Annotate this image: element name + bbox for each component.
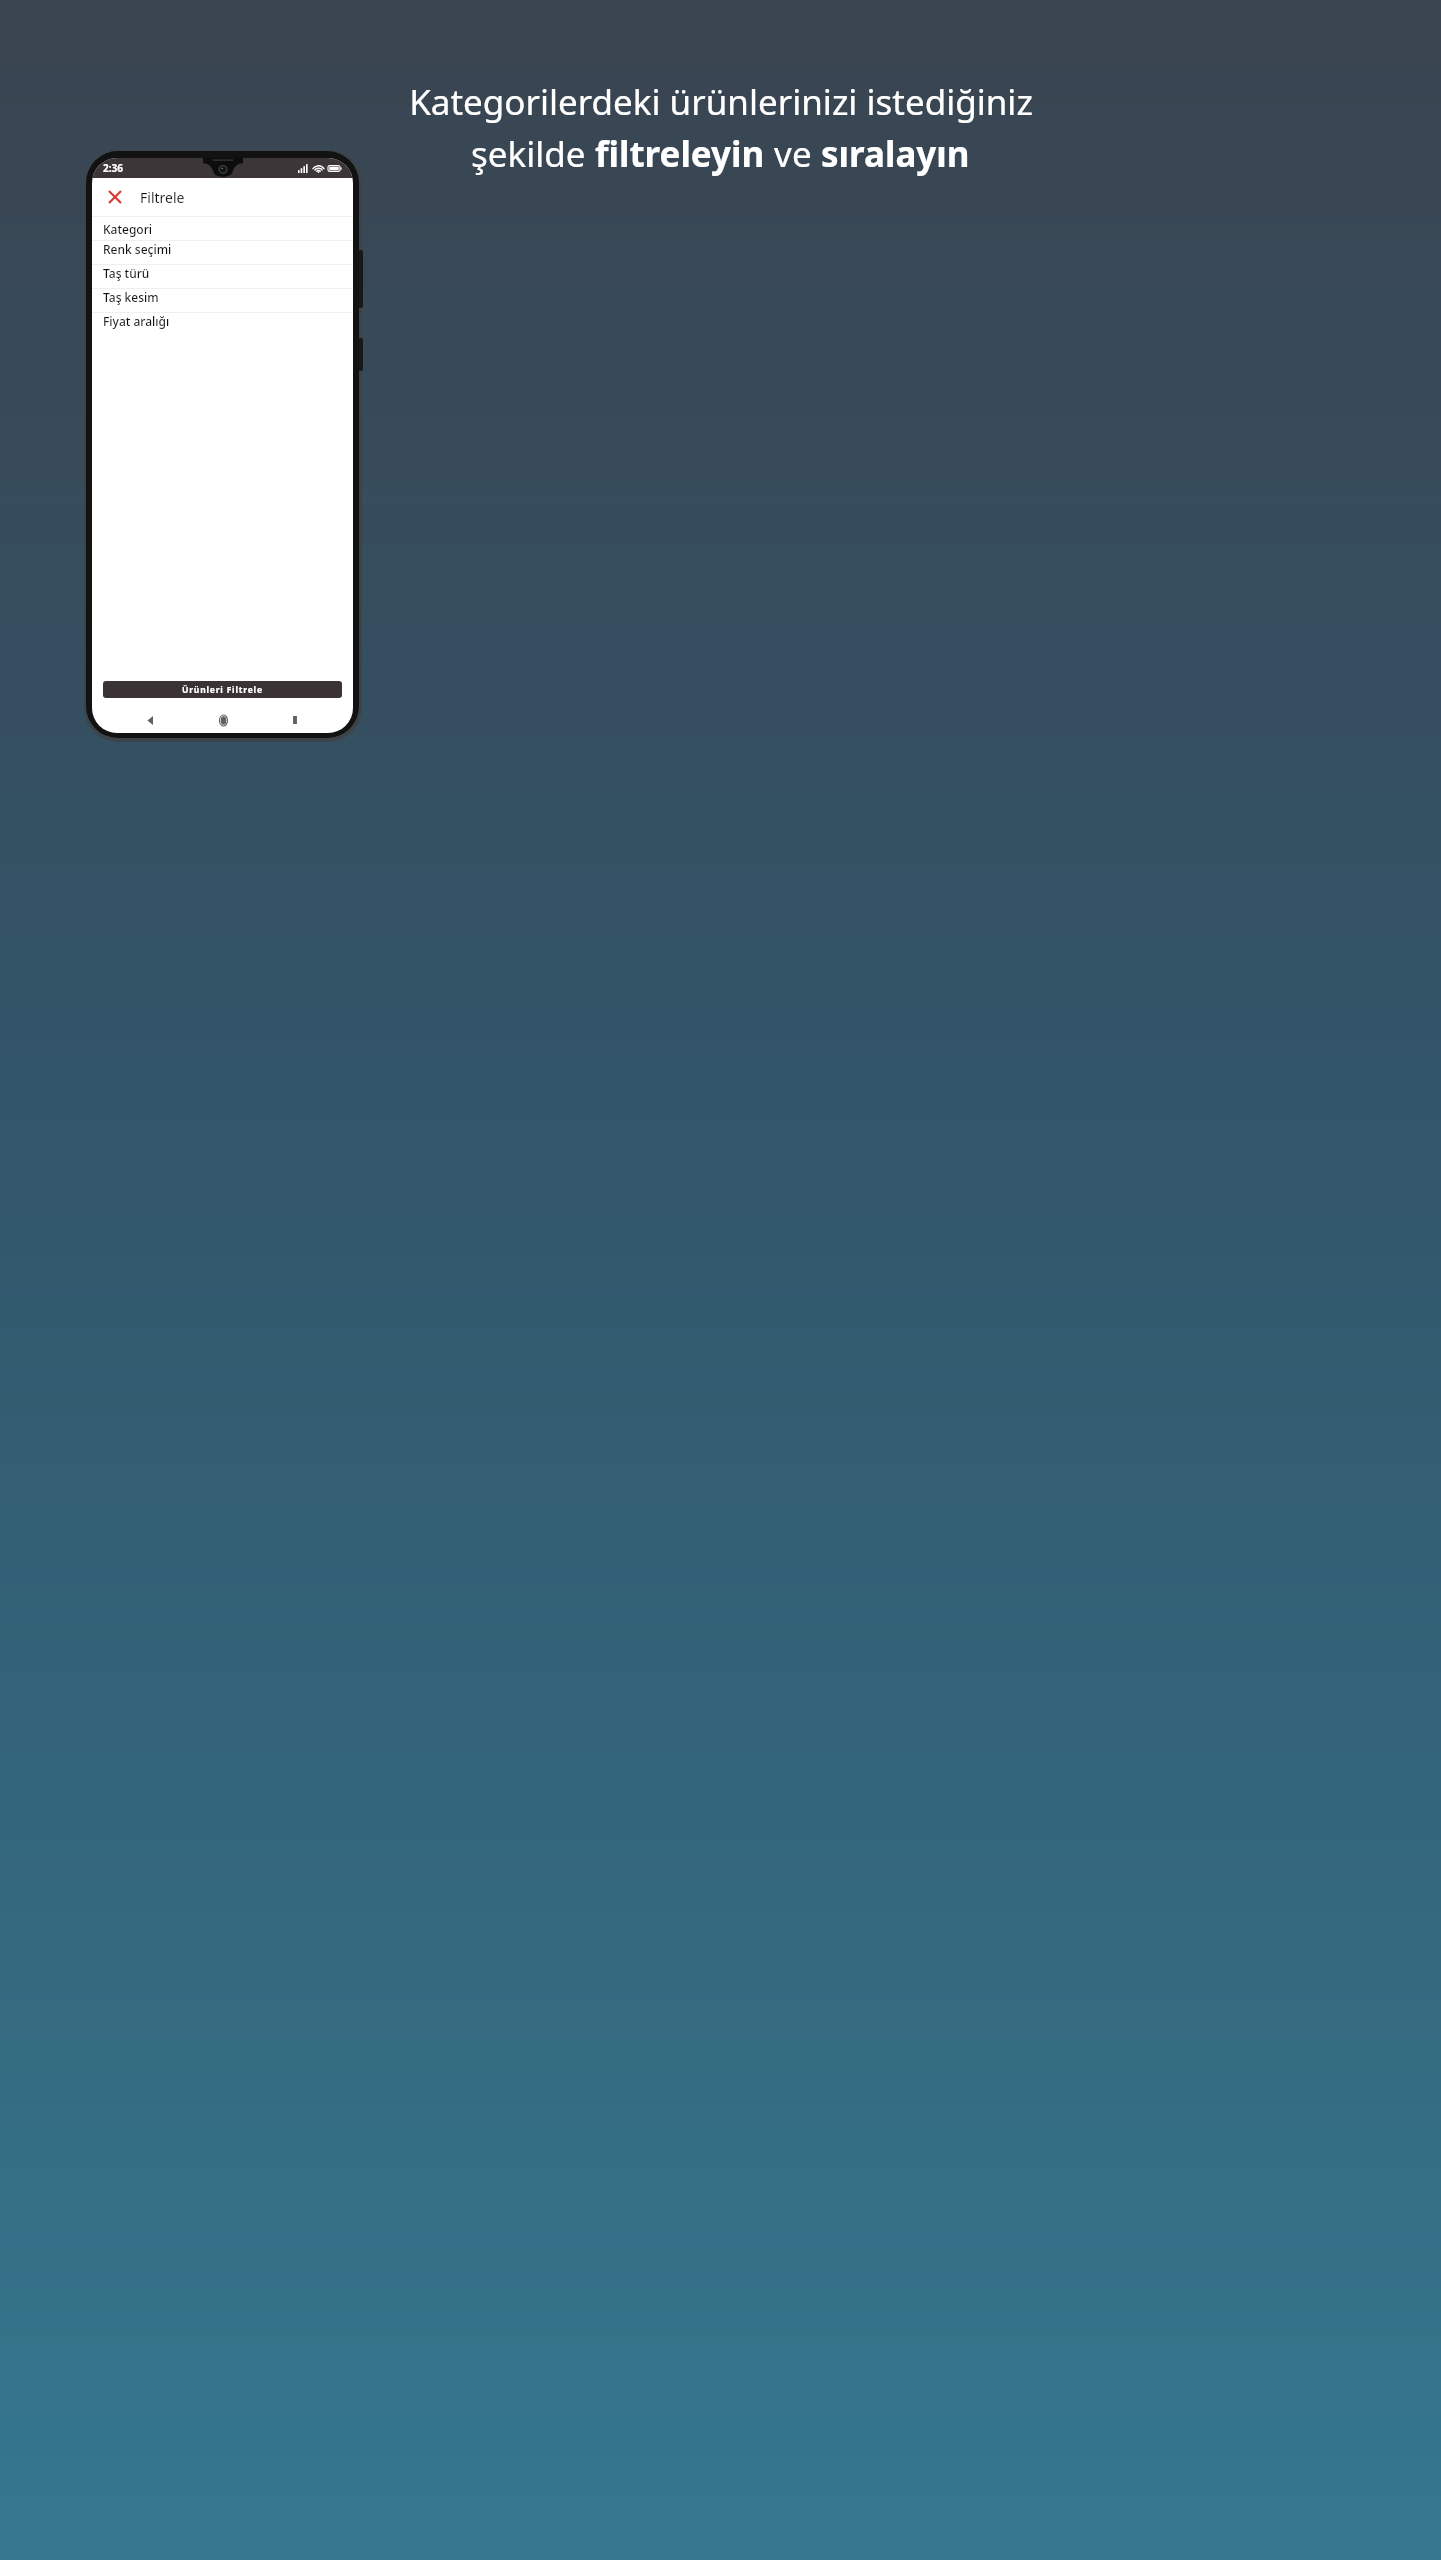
staticText: Fiyat aralığı xyxy=(103,313,170,329)
staticText: şekilde xyxy=(471,130,595,178)
button[interactable]: Close xyxy=(98,180,132,214)
button[interactable]: Home xyxy=(208,707,238,733)
staticText: 2:36 xyxy=(103,161,123,175)
staticText: sıralayın xyxy=(821,130,970,178)
staticText: ve xyxy=(765,130,821,178)
staticText: Ürünleri Filtrele xyxy=(182,684,263,696)
button[interactable]: Back xyxy=(135,707,165,733)
staticText: Kategori xyxy=(103,221,153,237)
staticText: Renk seçimi xyxy=(103,241,172,257)
staticText: Taş kesim xyxy=(103,289,159,305)
button[interactable]: Kategori xyxy=(92,217,353,240)
button[interactable]: Fiyat aralığı xyxy=(92,313,353,336)
button[interactable]: Ürünleri Filtrele xyxy=(103,681,342,698)
staticText: Filtrele xyxy=(140,188,185,207)
staticText: Taş türü xyxy=(103,265,150,281)
staticText: Kategorilerdeki ürünlerinizi istediğiniz xyxy=(409,78,1033,126)
staticText: filtreleyin xyxy=(595,130,765,178)
button[interactable]: Taş kesim xyxy=(92,289,353,312)
button[interactable]: Recent apps xyxy=(280,707,310,733)
button[interactable]: Renk seçimi xyxy=(92,241,353,264)
button[interactable]: Taş türü xyxy=(92,265,353,288)
